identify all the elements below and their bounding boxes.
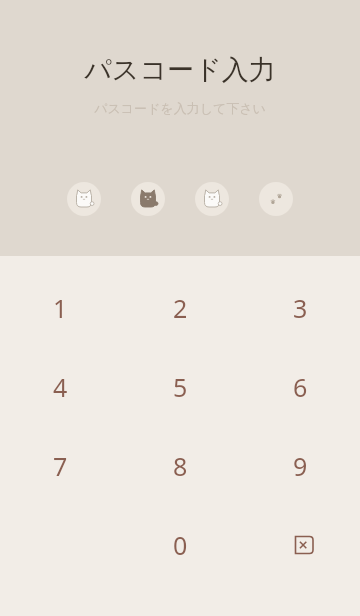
button[interactable]: 8 xyxy=(120,426,240,505)
button[interactable]: 7 xyxy=(0,426,120,505)
button[interactable]: 9 xyxy=(240,426,360,505)
button[interactable]: 1 xyxy=(0,268,120,347)
staticText: 1 xyxy=(53,291,68,325)
button[interactable]: 6 xyxy=(240,347,360,426)
staticText: 8 xyxy=(173,449,188,483)
staticText: パスコードを入力して下さい xyxy=(94,100,266,116)
staticText: 5 xyxy=(173,370,188,404)
button[interactable]: 2 xyxy=(120,268,240,347)
staticText: 3 xyxy=(293,291,308,325)
staticText: 7 xyxy=(53,449,68,483)
button[interactable]: 5 xyxy=(120,347,240,426)
staticText: 4 xyxy=(53,370,68,404)
staticText: 2 xyxy=(173,291,188,325)
staticText: パスコード入力 xyxy=(84,53,276,87)
button[interactable]: 0 xyxy=(120,505,240,584)
staticText: 9 xyxy=(293,449,308,483)
staticText: 0 xyxy=(173,528,188,562)
staticText: 6 xyxy=(293,370,308,404)
button[interactable]: Backspace xyxy=(240,505,360,584)
button[interactable]: 4 xyxy=(0,347,120,426)
button[interactable]: 3 xyxy=(240,268,360,347)
